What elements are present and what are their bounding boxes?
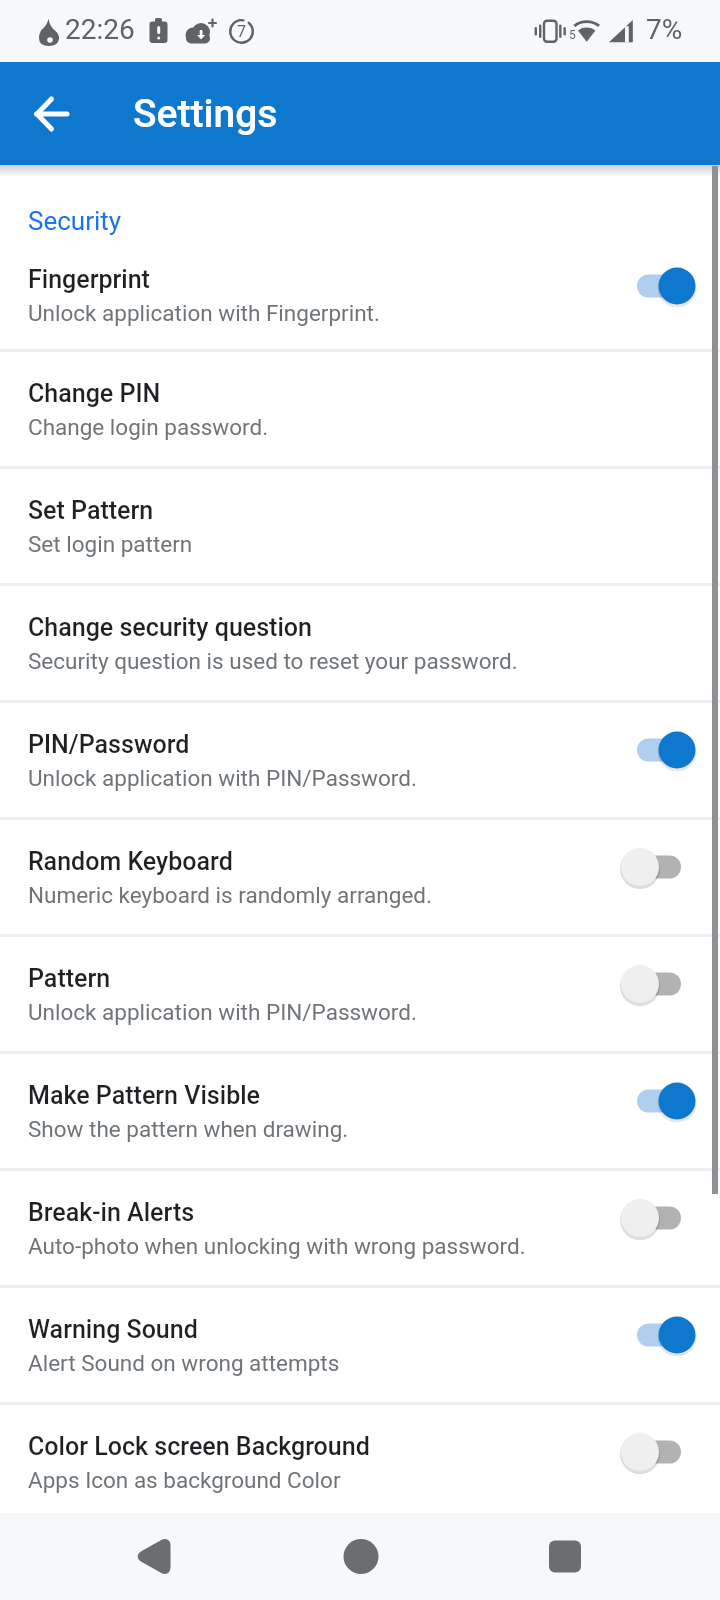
- staticText: Change security question: [28, 613, 312, 642]
- staticText: Change login password.: [28, 414, 269, 440]
- staticText: 7%: [646, 13, 683, 46]
- staticText: Break-in Alerts: [28, 1198, 195, 1227]
- button[interactable]: PIN/Password: [0, 703, 720, 820]
- staticText: Settings: [133, 91, 278, 137]
- button[interactable]: Make Pattern Visible: [0, 1054, 720, 1171]
- staticText: Color Lock screen Background: [28, 1432, 370, 1461]
- staticText: Set Pattern: [28, 496, 154, 525]
- button[interactable]: [619, 1079, 720, 1123]
- button[interactable]: Fingerprint: [0, 242, 720, 352]
- staticText: Fingerprint: [28, 265, 150, 294]
- staticText: Numeric keyboard is randomly arranged.: [28, 882, 432, 908]
- staticText: Random Keyboard: [28, 847, 233, 876]
- staticText: Unlock application with PIN/Password.: [28, 765, 417, 791]
- staticText: Unlock application with PIN/Password.: [28, 999, 417, 1025]
- staticText: Security: [28, 206, 122, 236]
- staticText: 22:26: [65, 13, 135, 46]
- button[interactable]: [619, 962, 720, 1006]
- button[interactable]: [619, 845, 720, 889]
- button[interactable]: Change security question: [0, 586, 720, 703]
- button[interactable]: [619, 1196, 720, 1240]
- button[interactable]: [619, 1313, 720, 1357]
- button[interactable]: Color Lock screen Background: [0, 1405, 720, 1522]
- staticText: Warning Sound: [28, 1315, 198, 1344]
- button[interactable]: Set Pattern: [0, 469, 720, 586]
- staticText: Unlock application with Fingerprint.: [28, 300, 380, 326]
- staticText: Apps Icon as background Color: [28, 1467, 341, 1493]
- button[interactable]: Warning Sound: [0, 1288, 720, 1405]
- staticText: Auto-photo when unlocking with wrong pas…: [28, 1233, 526, 1259]
- staticText: Pattern: [28, 964, 111, 993]
- button[interactable]: [0, 1513, 240, 1600]
- staticText: Alert Sound on wrong attempts: [28, 1350, 340, 1376]
- button[interactable]: Change PIN: [0, 352, 720, 469]
- button[interactable]: Pattern: [0, 937, 720, 1054]
- button[interactable]: [480, 1513, 720, 1600]
- button[interactable]: [619, 264, 720, 308]
- staticText: Set login pattern: [28, 531, 193, 557]
- button[interactable]: [619, 728, 720, 772]
- staticText: PIN/Password: [28, 730, 190, 759]
- button[interactable]: [619, 1430, 720, 1474]
- staticText: 5: [569, 28, 576, 42]
- button[interactable]: Break-in Alerts: [0, 1171, 720, 1288]
- staticText: Change PIN: [28, 379, 161, 408]
- staticText: 7: [237, 22, 246, 41]
- staticText: Make Pattern Visible: [28, 1081, 261, 1110]
- button[interactable]: Random Keyboard: [0, 820, 720, 937]
- staticText: Show the pattern when drawing.: [28, 1116, 349, 1142]
- button[interactable]: [240, 1513, 480, 1600]
- button[interactable]: [24, 86, 80, 142]
- staticText: Security question is used to reset your …: [28, 648, 518, 674]
